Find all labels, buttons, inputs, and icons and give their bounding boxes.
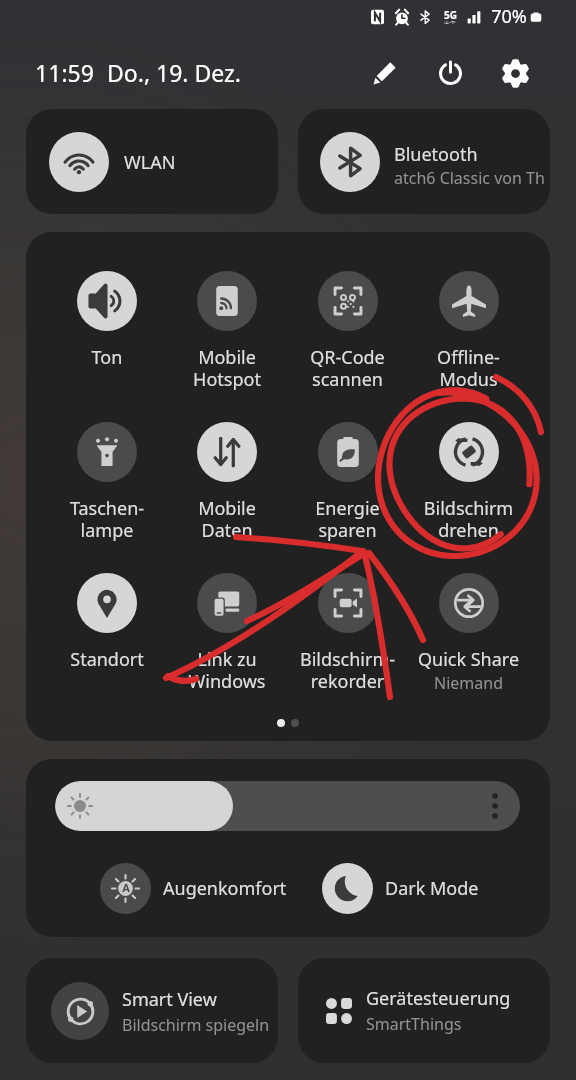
button[interactable]: A [100, 863, 287, 914]
staticText: Ton [47, 345, 167, 370]
button[interactable]: Taschen- lampe [47, 422, 167, 573]
staticText: Quick Share [408, 647, 529, 672]
button[interactable]: Bildschirm drehen [408, 422, 529, 573]
staticText: Do., 19. Dez. [107, 57, 241, 88]
button[interactable]: Ausschalten [427, 50, 473, 96]
staticText: Mobile Hotspot [167, 345, 287, 392]
staticText: Augenkomfort [163, 876, 287, 901]
staticText: QR-Code scannen [287, 345, 408, 392]
button[interactable]: Standort [47, 573, 167, 724]
staticText: Gerätesteuerung [366, 986, 511, 1011]
staticText: Offline- Modus [408, 345, 529, 392]
staticText: SmartThings [366, 1013, 462, 1035]
staticText: 5G [444, 8, 457, 22]
button[interactable] [55, 781, 520, 831]
button[interactable]: Bluetooth [298, 109, 550, 214]
button[interactable]: Ton [47, 271, 167, 422]
button[interactable]: Mobile Hotspot [167, 271, 287, 422]
button[interactable]: Einstellungen [492, 50, 538, 96]
staticText: atch6 Classic von Th [394, 167, 545, 189]
staticText: Taschen- lampe [47, 496, 167, 543]
staticText: Niemand [408, 672, 529, 694]
button[interactable]: Mobile Daten [167, 422, 287, 573]
staticText: Bildschirm spiegeln [122, 1014, 270, 1036]
button[interactable]: Quick Share [408, 573, 529, 724]
button[interactable]: QR-Code scannen [287, 271, 408, 422]
staticText: Energie sparen [287, 496, 408, 543]
staticText: Smart View [122, 987, 217, 1012]
staticText: A [122, 880, 130, 895]
button[interactable]: Offline- Modus [408, 271, 529, 422]
staticText: 11:59 [35, 57, 94, 88]
staticText: Bildschirm- rekorder [287, 647, 408, 694]
staticText: Standort [47, 647, 167, 672]
staticText: 70% [491, 4, 527, 29]
button[interactable]: Link zu Windows [167, 573, 287, 724]
button[interactable]: Smart View [26, 958, 278, 1063]
button[interactable]: Bearbeiten [362, 50, 408, 96]
staticText: Bluetooth [394, 142, 478, 167]
button[interactable]: Dark Mode [322, 863, 479, 914]
button[interactable]: Gerätesteuerung [298, 958, 550, 1063]
staticText: Dark Mode [385, 876, 479, 901]
button[interactable]: Energie sparen [287, 422, 408, 573]
staticText: Mobile Daten [167, 496, 287, 543]
staticText: Bildschirm drehen [408, 496, 529, 543]
button[interactable]: WLAN [26, 109, 278, 214]
staticText: WLAN [124, 150, 176, 175]
button[interactable]: Bildschirm- rekorder [287, 573, 408, 724]
staticText: Link zu Windows [167, 647, 287, 694]
